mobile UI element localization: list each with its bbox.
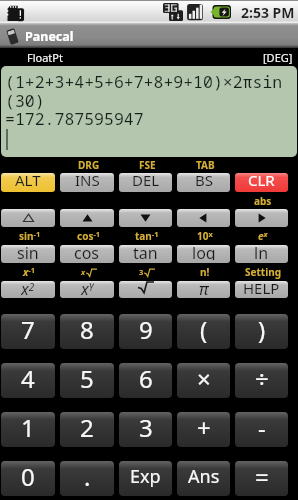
button[interactable]: 6: [119, 363, 172, 398]
button[interactable]: Up: [60, 209, 114, 227]
staticText: 8: [80, 314, 94, 346]
button[interactable]: 4: [1, 363, 55, 398]
staticText: FSE: [139, 158, 156, 172]
staticText: [DEG]: [263, 50, 293, 65]
staticText: 9: [139, 314, 153, 346]
staticText: Panecal: [25, 28, 74, 45]
staticText: ln: [254, 242, 269, 260]
staticText: x: [81, 267, 86, 277]
staticText: n!: [200, 265, 210, 279]
staticText: ALT: [15, 170, 41, 189]
staticText: tan: [133, 242, 158, 260]
staticText: xY: [81, 278, 94, 295]
staticText: x2: [21, 278, 35, 295]
staticText: BS: [195, 170, 213, 189]
staticText: tan-1: [135, 229, 159, 243]
staticText: ): [258, 314, 266, 346]
button[interactable]: x2: [1, 281, 55, 298]
button[interactable]: ÷: [235, 363, 288, 398]
button[interactable]: 1: [1, 412, 55, 447]
button[interactable]: cos: [60, 245, 114, 263]
button[interactable]: tan: [119, 245, 172, 263]
button[interactable]: 7: [1, 314, 55, 349]
staticText: 2: [80, 412, 94, 444]
button[interactable]: =: [235, 461, 288, 496]
staticText: (: [200, 314, 208, 346]
staticText: sin-1: [19, 229, 41, 243]
button[interactable]: xY: [60, 281, 114, 298]
staticText: sin: [17, 242, 39, 260]
button[interactable]: DEL: [119, 173, 172, 192]
button[interactable]: Cursor up: [1, 209, 55, 227]
staticText: INS: [75, 170, 100, 189]
staticText: 3: [139, 412, 153, 444]
button[interactable]: log: [177, 245, 230, 263]
staticText: x-1: [23, 265, 36, 279]
staticText: +: [197, 412, 211, 444]
button[interactable]: [119, 281, 172, 298]
staticText: Ans: [188, 464, 220, 489]
staticText: ×: [197, 363, 211, 395]
button[interactable]: HELP: [235, 281, 288, 298]
staticText: 3: [139, 267, 144, 277]
staticText: DRG: [78, 158, 100, 172]
staticText: cos-1: [77, 229, 101, 243]
button[interactable]: (: [177, 314, 230, 349]
staticText: DEL: [132, 170, 160, 189]
staticText: HELP: [243, 278, 280, 295]
button[interactable]: Ans: [177, 461, 230, 496]
staticText: π: [199, 278, 209, 295]
button[interactable]: -: [235, 412, 288, 447]
staticText: 0: [21, 461, 35, 493]
staticText: log: [192, 242, 216, 260]
staticText: FloatPt: [27, 50, 63, 65]
staticText: 10x: [197, 229, 213, 243]
staticText: -: [258, 412, 266, 444]
staticText: 5: [80, 363, 94, 395]
staticText: 4: [21, 363, 35, 395]
button[interactable]: 3: [119, 412, 172, 447]
button[interactable]: 9: [119, 314, 172, 349]
button[interactable]: +: [177, 412, 230, 447]
button[interactable]: ALT: [1, 173, 55, 192]
button[interactable]: sin: [1, 245, 55, 263]
button[interactable]: 8: [60, 314, 114, 349]
staticText: abs: [254, 194, 272, 208]
button[interactable]: Exp: [119, 461, 172, 496]
button[interactable]: 0: [1, 461, 55, 496]
staticText: (1+2+3+4+5+6+7+8+9+10)×2πsin: [5, 70, 283, 92]
staticText: =: [255, 461, 269, 493]
staticText: 2:53 PM: [241, 3, 295, 22]
staticText: 6: [139, 363, 153, 395]
staticText: Setting: [245, 265, 281, 279]
button[interactable]: .: [60, 461, 114, 496]
staticText: TAB: [196, 158, 215, 172]
button[interactable]: ×: [177, 363, 230, 398]
button[interactable]: Left: [177, 209, 230, 227]
staticText: =172.787595947: [5, 107, 144, 129]
button[interactable]: 5: [60, 363, 114, 398]
button[interactable]: CLR: [235, 173, 288, 192]
staticText: ÷: [255, 363, 269, 395]
button[interactable]: π: [177, 281, 230, 298]
staticText: (30): [5, 89, 45, 111]
staticText: CLR: [248, 170, 275, 189]
staticText: cos: [74, 242, 100, 260]
staticText: 1: [21, 412, 35, 444]
button[interactable]: Right: [235, 209, 288, 227]
button[interactable]: Down: [119, 209, 172, 227]
staticText: .: [84, 461, 91, 493]
staticText: Exp: [130, 464, 161, 489]
button[interactable]: ): [235, 314, 288, 349]
button[interactable]: INS: [60, 173, 114, 192]
staticText: ex: [258, 229, 268, 243]
button[interactable]: ln: [235, 245, 288, 263]
button[interactable]: 2: [60, 412, 114, 447]
button[interactable]: BS: [177, 173, 230, 192]
staticText: 7: [21, 314, 35, 346]
